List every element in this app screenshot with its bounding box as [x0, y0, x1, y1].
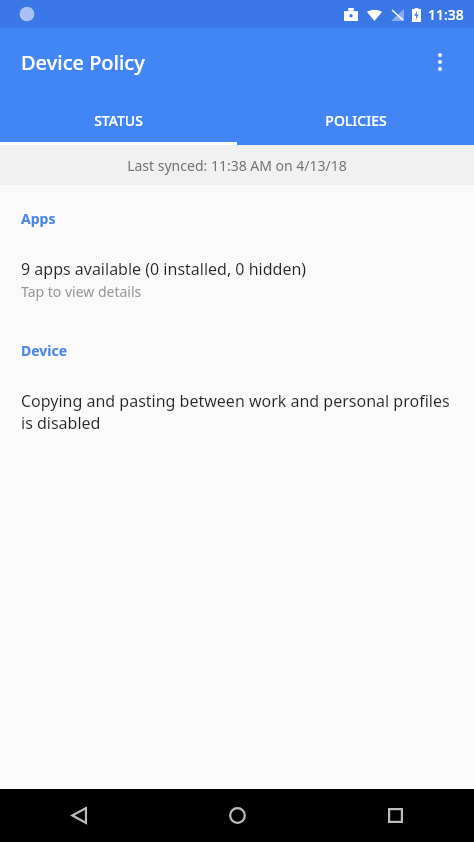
staticText: Tap to view details	[21, 282, 142, 301]
button[interactable]: Copying and pasting between work and per…	[0, 364, 474, 442]
button[interactable]: More options	[416, 38, 464, 86]
staticText: Device	[21, 341, 474, 360]
staticText: Copying and pasting between work and per…	[21, 390, 453, 434]
button[interactable]: Back	[0, 789, 158, 842]
button[interactable]: 9 apps available (0 installed, 0 hidden)	[0, 232, 474, 309]
staticText: 11:38	[428, 5, 464, 24]
staticText: POLICIES	[325, 111, 387, 130]
button[interactable]: STATUS	[0, 96, 237, 145]
button[interactable]: POLICIES	[237, 96, 474, 145]
staticText: Last synced: 11:38 AM on 4/13/18	[127, 156, 347, 175]
button[interactable]: Recent apps	[316, 789, 474, 842]
staticText: Device Policy	[21, 49, 145, 76]
staticText: STATUS	[94, 111, 143, 130]
staticText: 9 apps available (0 installed, 0 hidden)	[21, 258, 307, 280]
button[interactable]: Home	[158, 789, 316, 842]
staticText: Apps	[21, 209, 474, 228]
